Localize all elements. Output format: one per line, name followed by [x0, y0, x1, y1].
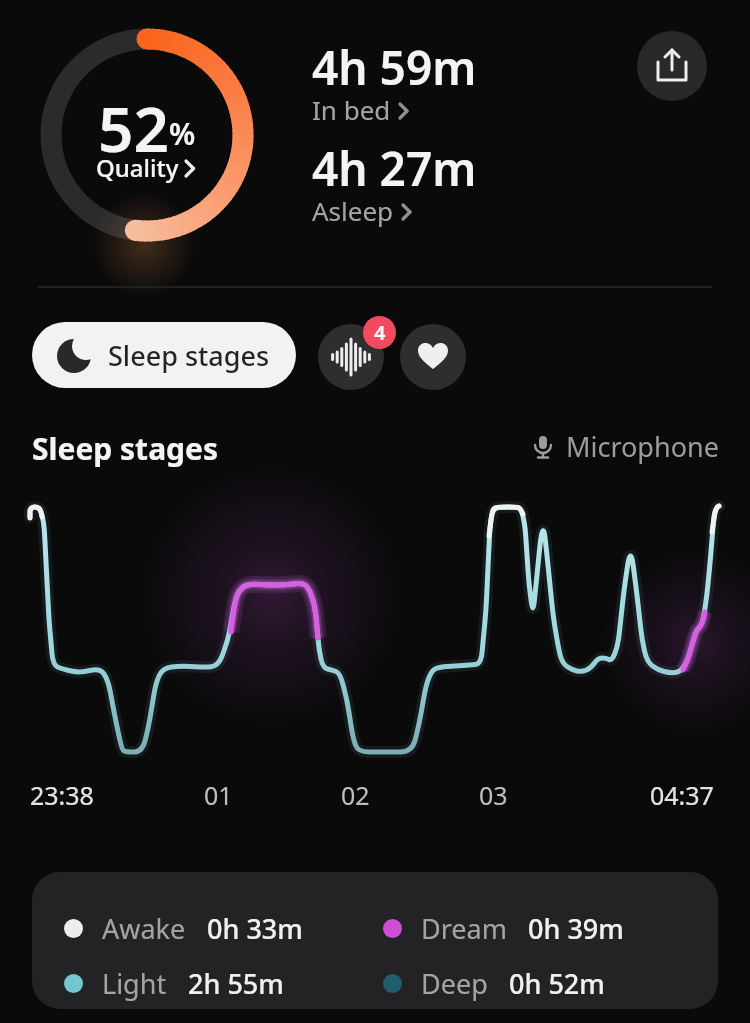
button[interactable]: Awake	[32, 872, 718, 1009]
button[interactable]	[318, 324, 384, 390]
staticText: Dream	[421, 910, 507, 947]
staticText: 03	[479, 778, 508, 812]
button[interactable]	[400, 324, 466, 390]
staticText: 23:38	[30, 778, 94, 812]
staticText: %	[169, 113, 196, 154]
staticText: In bed	[312, 92, 391, 127]
staticText: Light	[102, 965, 167, 1002]
staticText: Deep	[421, 965, 488, 1002]
staticText: 04:37	[650, 778, 714, 812]
staticText: 02	[341, 778, 370, 812]
button[interactable]: Asleep	[312, 193, 412, 228]
staticText: 0h 33m	[207, 910, 303, 947]
button[interactable]: 52	[47, 86, 247, 158]
button[interactable]: Sleep stages	[32, 322, 296, 388]
staticText: Microphone	[566, 428, 719, 465]
staticText: Quality	[96, 151, 179, 183]
staticText: Asleep	[312, 193, 394, 228]
button[interactable]	[637, 31, 707, 101]
staticText: 0h 52m	[509, 965, 605, 1002]
staticText: 4	[374, 319, 386, 346]
staticText: 52	[98, 86, 169, 158]
staticText: Awake	[102, 910, 186, 947]
staticText: 0h 39m	[528, 910, 624, 947]
staticText: Sleep stages	[32, 428, 219, 469]
staticText: 4h 59m	[312, 36, 477, 99]
staticText: 01	[204, 778, 233, 812]
staticText: 4h 27m	[312, 137, 477, 200]
staticText: Sleep stages	[108, 337, 270, 374]
button[interactable]: Microphone	[530, 428, 719, 465]
staticText: 2h 55m	[188, 965, 284, 1002]
button[interactable]: In bed	[312, 92, 409, 127]
